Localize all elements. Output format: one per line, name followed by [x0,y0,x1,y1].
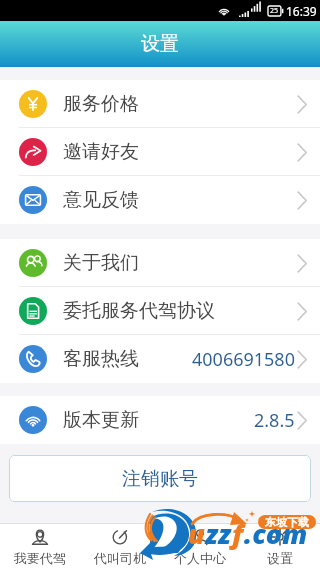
button[interactable]: 代叫司机 [80,524,160,569]
button[interactable]: 注销账号 [9,455,311,502]
staticText: 邀请好友 [63,140,139,164]
button[interactable]: 意见反馈 [0,176,320,224]
staticText: 25 [270,6,279,16]
staticText: zz [205,515,232,552]
staticText: 版本更新 [63,408,139,432]
staticText: u [188,515,205,552]
staticText: .com [244,515,308,552]
button[interactable]: 客服热线 [0,335,320,383]
staticText: 代叫司机 [94,550,146,566]
button[interactable]: 关于我们 [0,239,320,287]
staticText: 注销账号 [122,467,198,491]
button[interactable]: 我要代驾 [0,524,80,569]
button[interactable]: 委托服务代驾协议 [0,287,320,335]
staticText: 设置 [141,32,179,56]
button[interactable]: 版本更新 [0,396,320,444]
button[interactable]: 邀请好友 [0,128,320,176]
staticText: 东坡下载 [265,515,309,529]
button[interactable]: 服务价格 [0,80,320,128]
staticText: 委托服务代驾协议 [63,299,215,323]
button[interactable]: 个人中心 [160,524,240,569]
staticText: 设置 [267,550,293,566]
staticText: 关于我们 [63,251,139,275]
staticText: 2.8.5 [254,408,295,433]
staticText: 4006691580 [192,347,295,372]
staticText: 个人中心 [174,550,226,566]
staticText: 16:39 [286,3,317,19]
staticText: f [232,515,244,552]
staticText: 意见反馈 [63,188,139,212]
button[interactable]: 设置 [240,524,320,569]
staticText: 我要代驾 [14,550,66,566]
staticText: 客服热线 [63,347,139,371]
staticText: 服务价格 [63,92,139,116]
